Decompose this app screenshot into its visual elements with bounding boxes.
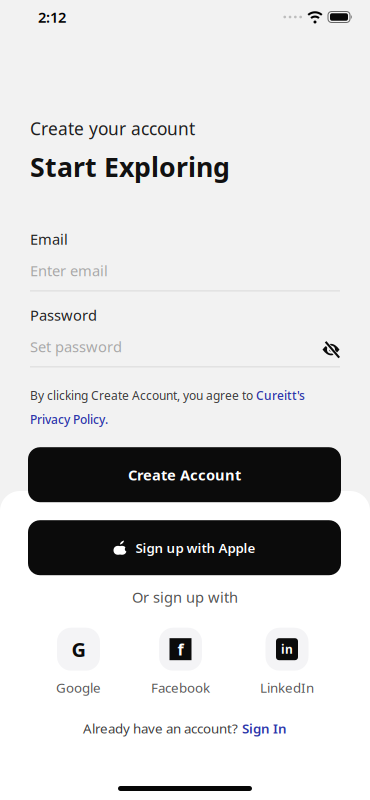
staticText: f xyxy=(177,639,183,660)
staticText: Or sign up with xyxy=(132,587,238,607)
button[interactable]: f xyxy=(151,628,210,696)
staticText: Facebook xyxy=(151,679,210,696)
staticText: G xyxy=(71,636,85,662)
staticText: 2:12 xyxy=(38,7,66,27)
staticText: Password xyxy=(30,305,97,325)
button[interactable]: Sign up with Apple xyxy=(28,520,341,575)
staticText: Sign up with Apple xyxy=(135,539,255,557)
staticText: Already have an account? xyxy=(83,719,238,737)
staticText: Google xyxy=(56,679,101,696)
button[interactable]: G xyxy=(56,628,101,696)
staticText: Create Account xyxy=(128,465,241,484)
staticText: Create your account xyxy=(30,117,195,140)
staticText: By clicking Create Account, you agree to xyxy=(30,387,256,403)
staticText: Set password xyxy=(30,337,122,356)
staticText: LinkedIn xyxy=(260,679,314,696)
staticText: Cureitt's xyxy=(256,387,305,403)
button[interactable]: in xyxy=(260,628,314,696)
staticText: in xyxy=(281,641,293,657)
staticText: Start Exploring xyxy=(30,149,230,184)
staticText: Privacy Policy. xyxy=(30,411,108,427)
staticText: Email xyxy=(30,229,68,249)
staticText: Enter email xyxy=(30,261,108,280)
staticText: Sign In xyxy=(242,719,287,737)
button[interactable]: Sign In xyxy=(242,719,287,737)
button[interactable]: Show password xyxy=(322,339,340,355)
button[interactable]: Privacy Policy. xyxy=(30,411,108,427)
button[interactable]: Create Account xyxy=(28,447,341,502)
